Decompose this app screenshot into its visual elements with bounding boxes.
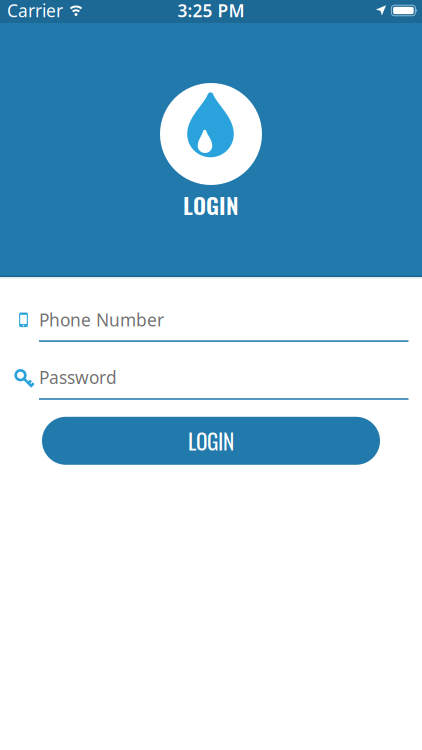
staticText: Password [39,366,117,389]
button[interactable]: Phone Number [0,311,422,342]
staticText: 3:25 PM [177,0,244,22]
staticText: Carrier [7,0,63,22]
button[interactable]: LOGIN [42,417,380,465]
button[interactable]: Password [0,368,422,400]
staticText: LOGIN [188,425,234,457]
staticText: LOGIN [183,188,239,222]
staticText: Phone Number [39,308,164,331]
